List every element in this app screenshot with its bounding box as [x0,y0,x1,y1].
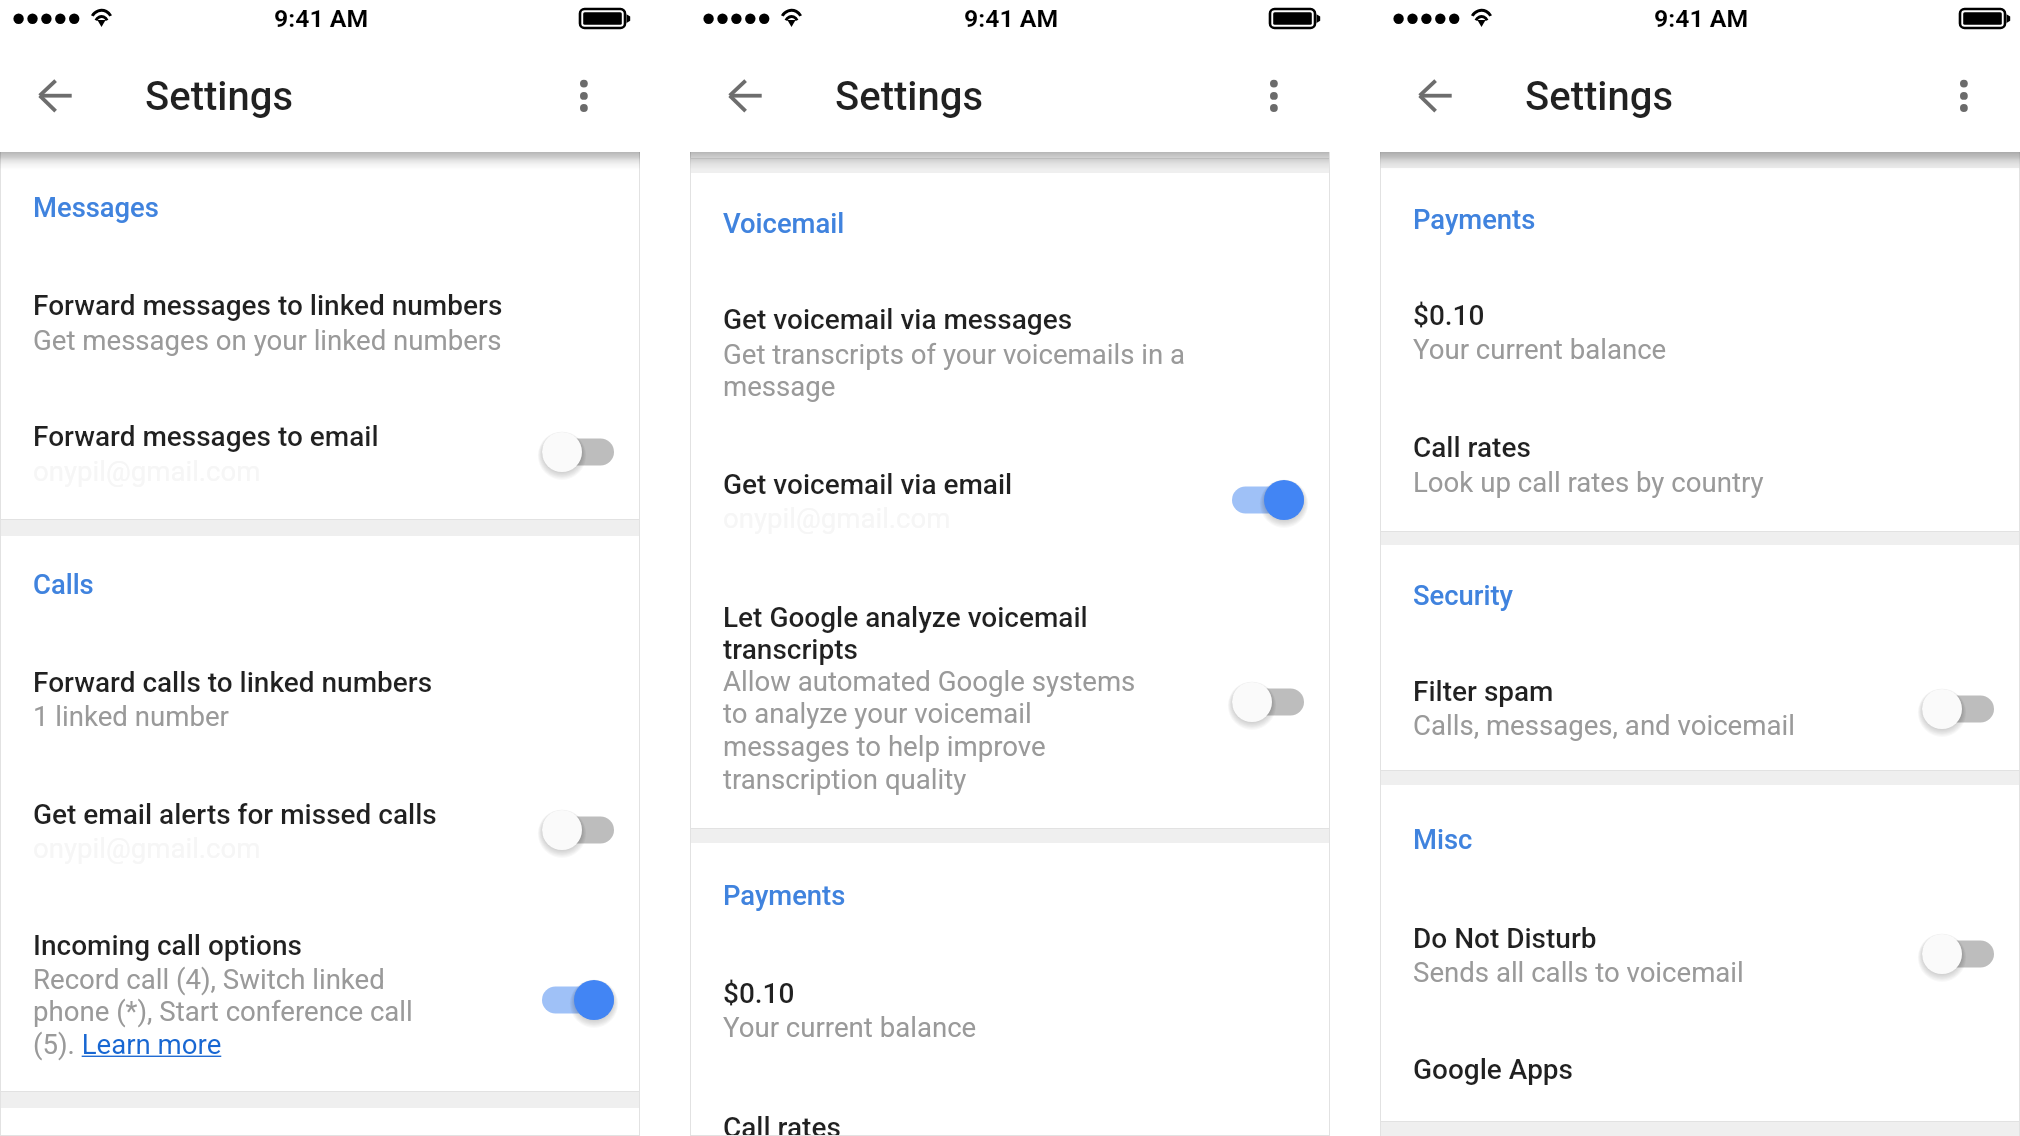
staticText: $0.10 [723,977,795,1010]
staticText: Settings [145,73,294,120]
staticText: Settings [835,73,984,120]
staticText: 9:41 AM [1654,4,1749,33]
staticText: 1 linked number [33,700,229,732]
staticText: onypil@gmail.com [33,455,261,487]
button[interactable]: More options [554,65,614,125]
staticText: Let Google analyze voicemail transcripts [723,601,1123,666]
staticText: Allow automated Google systems to analyz… [723,665,1148,796]
button[interactable]: Call rates [690,1078,1329,1136]
staticText: Security [1413,580,1513,612]
staticText: Do Not Disturb [1413,922,1597,955]
button[interactable]: Get email alerts for missed calls [0,776,640,881]
staticText: Call rates [1413,431,1531,464]
staticText: Settings [1525,73,1674,120]
button[interactable]: Switch off [1902,679,2002,739]
button[interactable]: Get voicemail via messages [690,278,1329,423]
button[interactable]: Filter spam [1380,645,2020,755]
button[interactable]: Switch on [1212,470,1312,530]
button[interactable]: Forward messages to linked numbers [0,278,640,388]
button[interactable]: More options [1934,65,1994,125]
staticText: Calls, messages, and voicemail [1413,709,1795,741]
button[interactable]: Back [716,65,776,125]
staticText: Look up call rates by country [1413,466,1764,498]
button[interactable]: $0.10 [690,943,1329,1048]
staticText: Get email alerts for missed calls [33,798,437,831]
button[interactable]: Let Google analyze voicemail transcripts [690,573,1329,823]
button[interactable]: Google Apps [1380,1025,2020,1105]
staticText: 9:41 AM [964,4,1059,33]
staticText: $0.10 [1413,299,1485,332]
staticText: Forward messages to linked numbers [33,289,503,322]
staticText: Your current balance [723,1011,977,1043]
staticText: Your current balance [1413,333,1667,365]
staticText: Get transcripts of your voicemails in a … [723,338,1223,403]
staticText: Forward messages to email [33,420,379,453]
button[interactable]: More options [1244,65,1304,125]
staticText: Record call (4), Switch linked phone (*)… [33,963,445,1061]
button[interactable]: Forward messages to email [0,403,640,513]
button[interactable]: Switch off [522,422,622,482]
staticText: Incoming call options [33,929,302,962]
staticText: onypil@gmail.com [723,502,951,534]
staticText: Forward calls to linked numbers [33,666,433,699]
button[interactable]: Switch on [522,970,622,1030]
button[interactable]: $0.10 [1380,264,2020,369]
staticText: Google Apps [1413,1053,1574,1086]
staticText: onypil@gmail.com [33,832,261,864]
staticText: Payments [723,880,846,912]
staticText: Payments [1413,204,1536,236]
staticText: Filter spam [1413,675,1554,708]
staticText: Call rates [723,1111,841,1136]
button[interactable]: Back [26,65,86,125]
staticText: Misc [1413,824,1473,856]
button[interactable]: Switch off [1902,924,2002,984]
button[interactable]: Back [1406,65,1466,125]
button[interactable]: Call rates [1380,399,2020,509]
staticText: Get voicemail via email [723,468,1013,501]
button[interactable]: Forward calls to linked numbers [0,636,640,741]
button[interactable]: Do Not Disturb [1380,885,2020,995]
staticText: Calls [33,569,94,601]
staticText: 9:41 AM [274,4,369,33]
staticText: Get messages on your linked numbers [33,324,502,356]
button[interactable]: Switch off [1212,672,1312,732]
staticText: Get voicemail via messages [723,303,1073,336]
button[interactable]: Incoming call options [0,906,640,1090]
button[interactable]: Get voicemail via email [690,438,1329,558]
button[interactable]: Switch off [522,800,622,860]
staticText: Voicemail [723,208,845,240]
staticText: Messages [33,192,159,224]
staticText: Sends all calls to voicemail [1413,956,1744,988]
